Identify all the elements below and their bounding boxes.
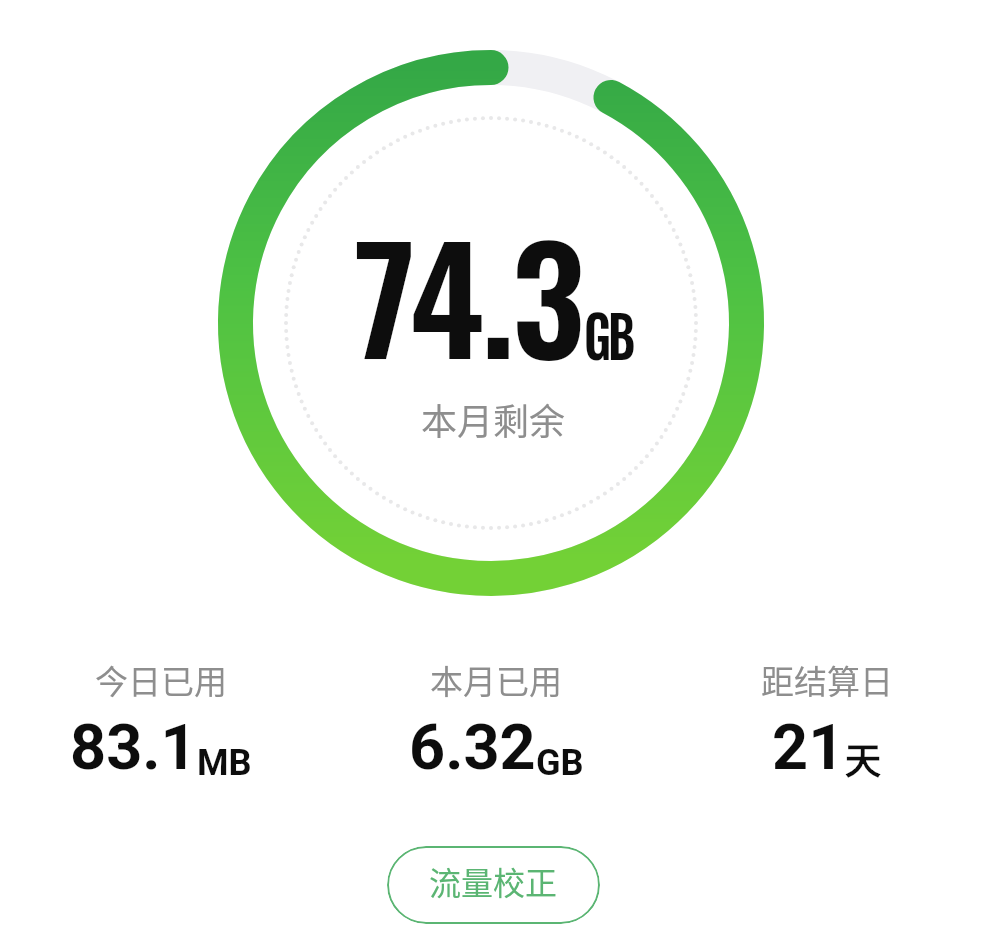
staticText: 6.32 [409, 711, 536, 785]
staticText: 本月已用 [430, 656, 562, 704]
button[interactable]: 流量校正 [387, 846, 600, 924]
staticText: 天 [845, 732, 882, 784]
staticText: GB [584, 291, 632, 377]
staticText: 流量校正 [429, 858, 558, 904]
staticText: GB [536, 742, 584, 784]
staticText: 74.3 [354, 186, 583, 401]
staticText: 21 [772, 711, 845, 785]
staticText: 今日已用 [95, 656, 227, 704]
staticText: 距结算日 [761, 656, 893, 704]
staticText: 83.1 [70, 711, 197, 785]
staticText: 本月剩余 [421, 393, 566, 445]
staticText: MB [197, 742, 252, 784]
